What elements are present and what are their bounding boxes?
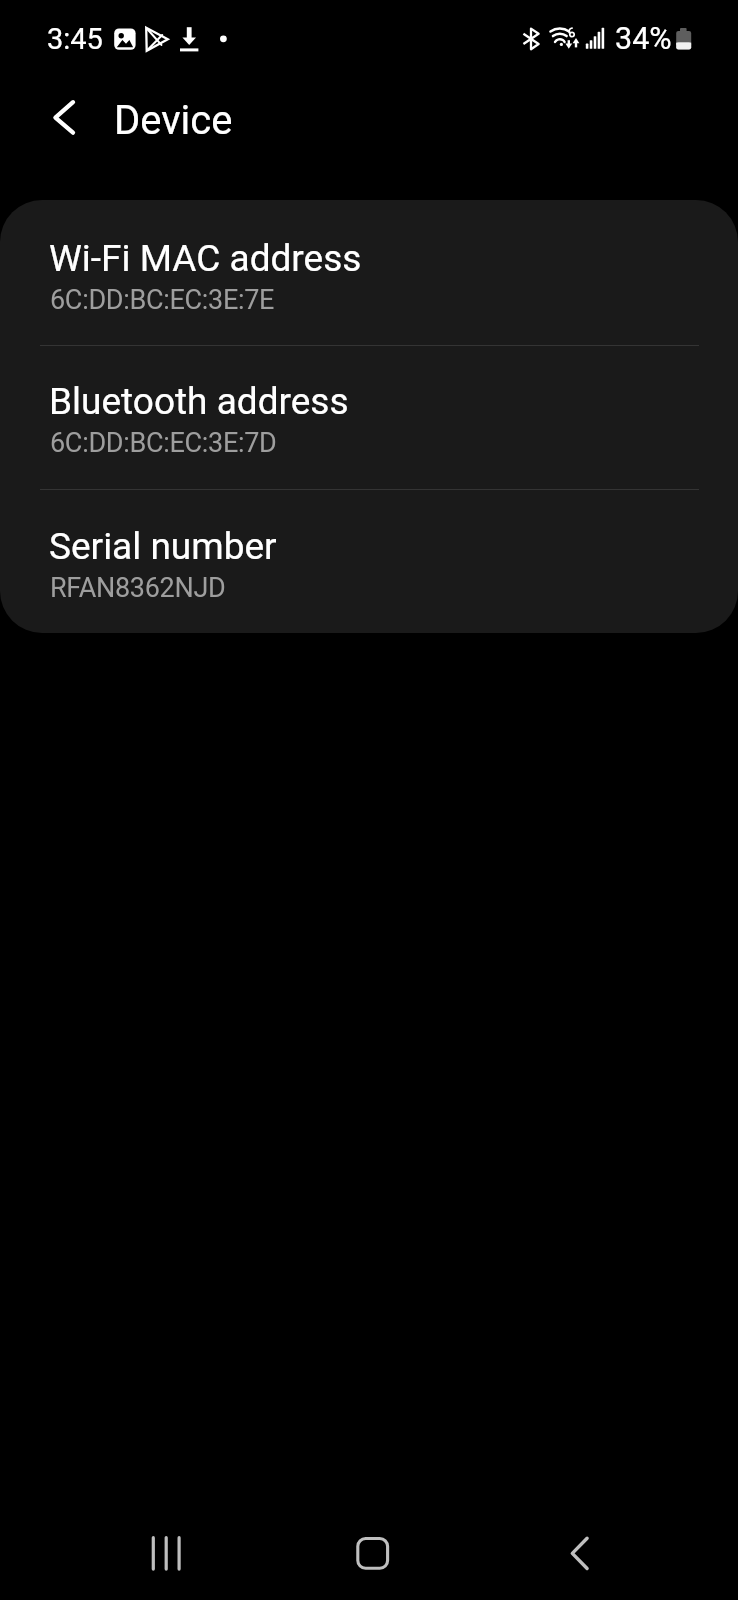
staticText: Wi-Fi MAC address <box>49 237 362 280</box>
button[interactable]: Back <box>523 1503 635 1600</box>
staticText: Bluetooth address <box>49 380 349 423</box>
staticText: 3:45 <box>47 22 103 56</box>
staticText: 6C:DD:BC:EC:3E:7D <box>50 427 277 459</box>
staticText: 34% <box>615 21 672 57</box>
staticText: 6C:DD:BC:EC:3E:7E <box>50 284 275 316</box>
button[interactable]: Home <box>317 1503 429 1600</box>
button[interactable]: Bluetooth address <box>0 346 738 489</box>
button[interactable]: Navigate up <box>32 87 94 149</box>
staticText: Serial number <box>49 525 277 568</box>
button[interactable]: Wi-Fi MAC address <box>0 200 738 345</box>
staticText: Device <box>114 97 233 144</box>
staticText: RFAN8362NJD <box>50 572 226 604</box>
button[interactable]: Serial number <box>0 490 738 633</box>
button[interactable]: Recent apps <box>110 1503 222 1600</box>
